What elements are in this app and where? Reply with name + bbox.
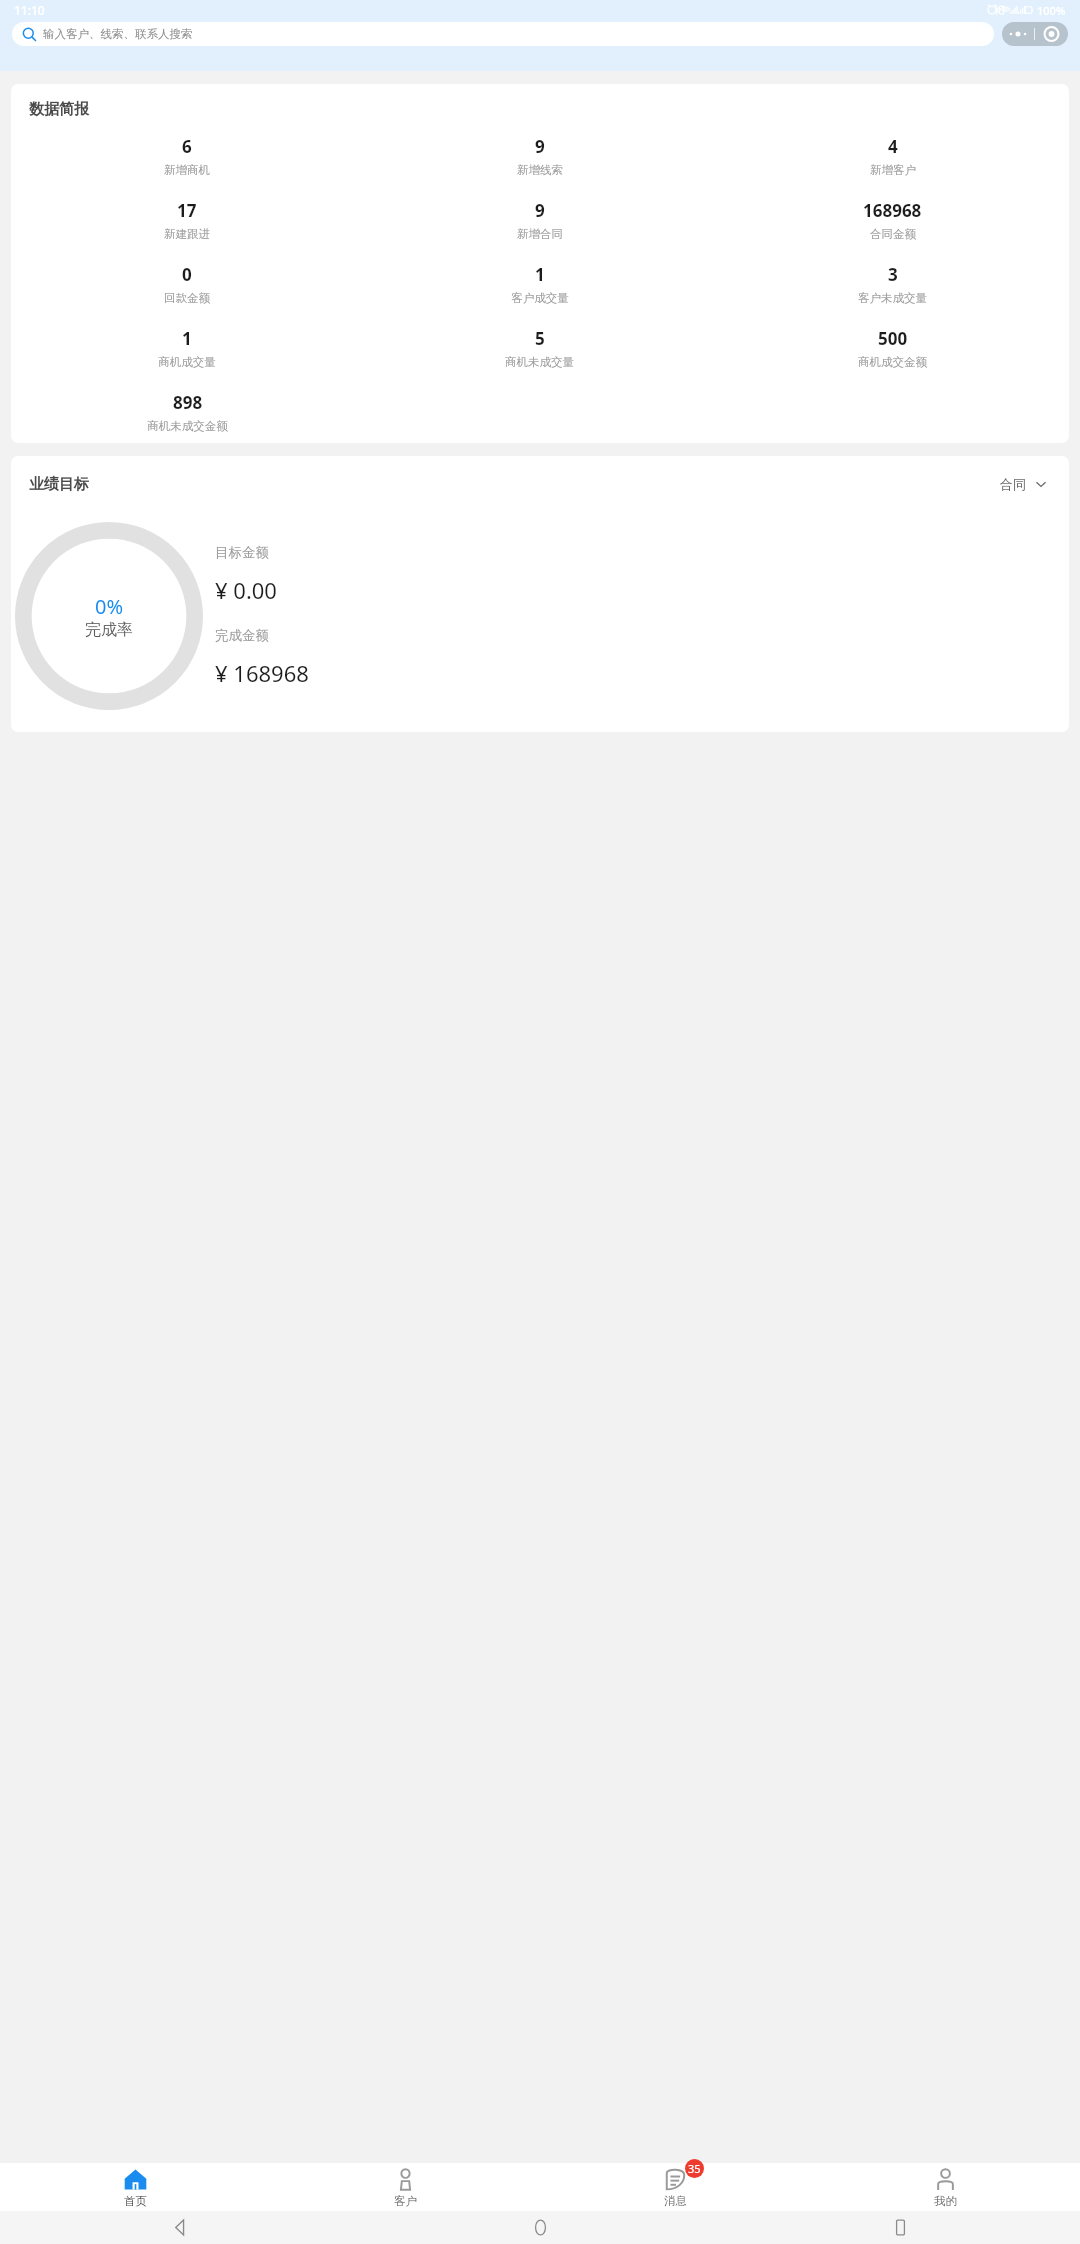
button[interactable]: 35 <box>540 2163 810 2211</box>
button[interactable]: Home <box>532 2219 549 2236</box>
staticText: 100% <box>1037 3 1066 18</box>
staticText: 商机成交金额 <box>858 355 927 369</box>
staticText: 首页 <box>124 2194 147 2208</box>
staticText: 消息 <box>664 2194 687 2208</box>
staticText: 商机成交量 <box>158 355 216 369</box>
staticText: 4 <box>888 135 898 158</box>
staticText: 新增合同 <box>517 227 563 241</box>
staticText: 完成金额 <box>215 627 269 644</box>
staticText: 回款金额 <box>164 291 210 305</box>
staticText: 数据简报 <box>29 100 89 119</box>
staticText: 合同金额 <box>870 227 916 241</box>
staticText: 完成率 <box>85 620 133 640</box>
button[interactable]: 客户 <box>270 2163 540 2211</box>
staticText: 1 <box>535 263 545 286</box>
staticText: 新增商机 <box>164 163 210 177</box>
button[interactable]: 合同 <box>996 472 1051 496</box>
button[interactable]: Back <box>172 2219 189 2236</box>
staticText: 合同 <box>1000 476 1026 492</box>
staticText: 输入客户、线索、联系人搜索 <box>43 27 193 41</box>
staticText: 9 <box>535 135 545 158</box>
staticText: 0 <box>182 263 192 286</box>
staticText: 客户未成交量 <box>858 291 927 305</box>
staticText: 客户成交量 <box>511 291 569 305</box>
staticText: 目标金额 <box>215 544 269 561</box>
button[interactable]: 首页 <box>0 2163 270 2211</box>
staticText: 新增客户 <box>870 163 916 177</box>
staticText: 客户 <box>394 2194 417 2208</box>
staticText: 我的 <box>934 2194 957 2208</box>
staticText: 500 <box>878 327 908 350</box>
staticText: 商机未成交量 <box>505 355 574 369</box>
button[interactable]: 数据简报 <box>11 84 1069 443</box>
staticText: 35 <box>688 2161 701 2176</box>
staticText: 商机未成交金额 <box>147 419 228 433</box>
staticText: 1 <box>182 327 192 350</box>
staticText: 新增线索 <box>517 163 563 177</box>
staticText: 新建跟进 <box>164 227 210 241</box>
button[interactable]: 输入客户、线索、联系人搜索 <box>12 22 994 46</box>
staticText: ¥ 168968 <box>215 658 309 688</box>
staticText: 168968 <box>863 199 922 222</box>
staticText: 5 <box>535 327 545 350</box>
button[interactable]: More options and scan <box>1002 22 1068 46</box>
button[interactable]: 我的 <box>810 2163 1080 2211</box>
staticText: 3 <box>888 263 898 286</box>
button[interactable]: 业绩目标 <box>11 456 1069 732</box>
staticText: 898 <box>173 391 203 414</box>
staticText: 6 <box>182 135 192 158</box>
staticText: 业绩目标 <box>29 475 89 494</box>
staticText: ¥ 0.00 <box>215 575 277 605</box>
staticText: 11:10 <box>14 2 45 18</box>
staticText: 9 <box>535 199 545 222</box>
staticText: 17 <box>177 199 197 222</box>
staticText: 0% <box>95 593 124 620</box>
button[interactable]: Recents <box>892 2219 909 2236</box>
